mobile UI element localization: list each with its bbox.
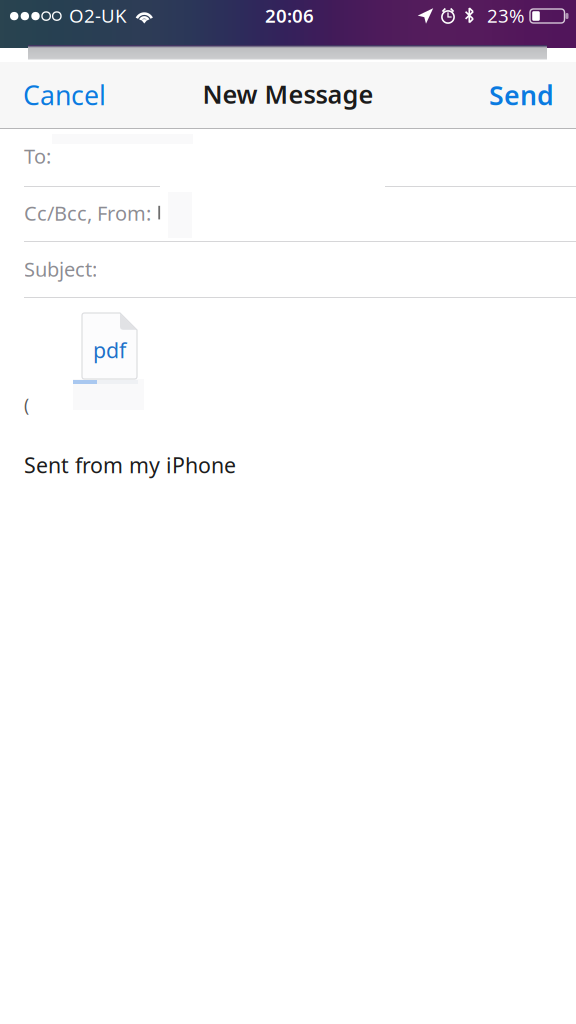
- staticText: New Message: [202, 77, 373, 111]
- button[interactable]: Subject:: [0, 249, 576, 289]
- button[interactable]: PDF attachment: [82, 313, 137, 379]
- button[interactable]: To:: [0, 136, 576, 176]
- button[interactable]: Cc/Bcc, From:: [0, 193, 576, 233]
- staticText: To:: [24, 143, 51, 169]
- staticText: Subject:: [24, 256, 97, 282]
- button[interactable]: Send: [479, 65, 564, 125]
- staticText: Cc/Bcc, From:: [24, 200, 151, 226]
- staticText: pdf: [93, 336, 126, 364]
- staticText: Sent from my iPhone: [24, 451, 236, 479]
- button[interactable]: Cancel: [12, 65, 117, 125]
- staticText: Cancel: [23, 77, 106, 113]
- staticText: Send: [489, 77, 554, 113]
- staticText: O2-UK: [69, 3, 127, 28]
- staticText: 20:06: [265, 3, 314, 28]
- staticText: 23%: [487, 3, 525, 28]
- staticText: (: [24, 393, 29, 416]
